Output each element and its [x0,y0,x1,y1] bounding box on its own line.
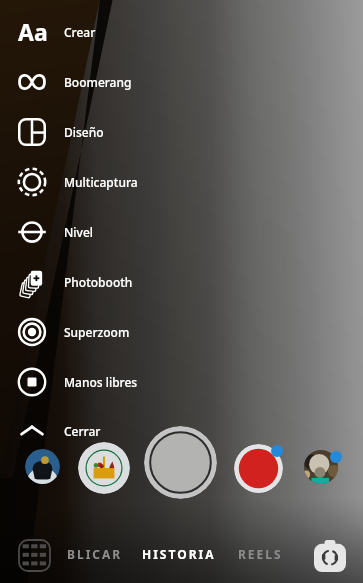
staticText: Photobooth [64,274,133,290]
staticText: Nivel [64,224,94,240]
button[interactable]: Photobooth [0,257,363,307]
staticText: Manos libres [64,374,138,390]
button[interactable]: Record video [234,444,283,493]
button[interactable]: Nivel [0,207,363,257]
staticText: REELS [238,546,283,562]
button[interactable]: BLICAR [67,546,123,562]
button[interactable]: Capture [144,426,217,499]
staticText: Aa [18,16,48,46]
button[interactable]: HISTORIA [142,546,216,562]
staticText: Cerrar [64,423,101,439]
staticText: HISTORIA [142,546,216,562]
button[interactable]: Picnic effect [78,442,130,494]
button[interactable]: Gallery [304,450,338,484]
button[interactable]: Aa [0,7,363,57]
staticText: Multicaptura [64,174,138,190]
button[interactable]: Cerrar [0,407,363,455]
staticText: Superzoom [64,324,130,340]
button[interactable]: Gallery [18,539,51,572]
button[interactable]: Boomerang [0,57,363,107]
button[interactable]: Switch camera [314,540,346,572]
button[interactable]: Multicaptura [0,157,363,207]
staticText: BLICAR [67,546,123,562]
staticText: Diseño [64,124,104,140]
button[interactable]: Superzoom [0,307,363,357]
staticText: Crear [64,24,96,40]
button[interactable]: Diseño [0,107,363,157]
button[interactable]: Darth Vader effect [25,449,60,484]
button[interactable]: REELS [238,546,283,562]
staticText: Boomerang [64,74,132,90]
button[interactable]: Manos libres [0,357,363,407]
